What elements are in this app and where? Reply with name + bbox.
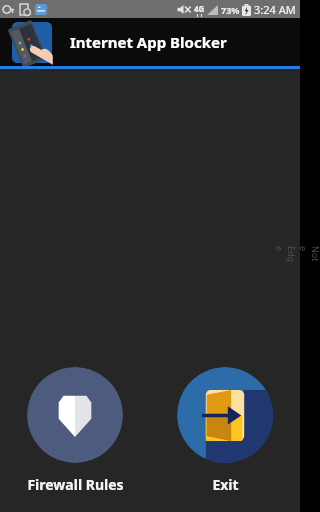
staticText: Internet App Blocker	[70, 32, 227, 52]
staticText: Firewall Rules	[27, 475, 124, 494]
staticText: 73%	[221, 4, 240, 16]
other: Firewall Rules	[27, 367, 123, 463]
staticText: Exit	[212, 475, 239, 494]
staticText: 4G	[194, 3, 205, 14]
staticText: Galaxy Note Edge	[274, 246, 320, 266]
button[interactable]: Internet App Blocker	[0, 18, 300, 66]
staticText: 3:24 AM	[254, 2, 296, 17]
button[interactable]: Exit	[150, 363, 300, 498]
other: Exit	[177, 367, 273, 463]
button[interactable]: Firewall Rules	[0, 363, 150, 498]
